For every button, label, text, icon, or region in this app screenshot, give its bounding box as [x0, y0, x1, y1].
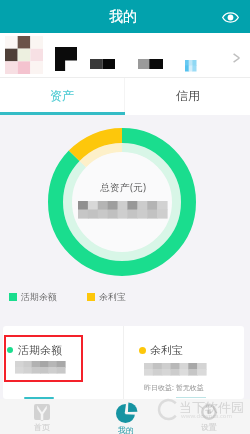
staticText: 我的: [118, 425, 134, 434]
button[interactable]: 余利宝: [124, 326, 244, 399]
staticText: 我的: [109, 8, 137, 26]
staticText: 余利宝: [99, 291, 126, 302]
button[interactable]: 资产: [0, 78, 124, 112]
button[interactable]: 信用: [125, 78, 250, 112]
staticText: 余利宝: [150, 343, 183, 357]
staticText: 信用: [176, 88, 200, 103]
staticText: 昨日收益: 暂无收益: [144, 383, 204, 393]
staticText: 首页: [34, 422, 50, 432]
button[interactable]: Toggle balance visibility: [218, 5, 242, 29]
button[interactable]: 我的: [84, 399, 167, 434]
staticText: 资产: [50, 88, 74, 103]
button[interactable]: 活期余额: [3, 326, 123, 399]
staticText: 总资产(元): [100, 180, 146, 194]
staticText: 活期余额: [21, 291, 57, 302]
button[interactable]: [0, 33, 250, 77]
staticText: 当下软件园: [179, 399, 244, 415]
staticText: www.downza.com: [181, 412, 233, 420]
staticText: 设置: [201, 422, 217, 432]
button[interactable]: 首页: [0, 399, 84, 434]
button[interactable]: 设置: [167, 399, 250, 434]
staticText: 活期余额: [18, 343, 62, 357]
